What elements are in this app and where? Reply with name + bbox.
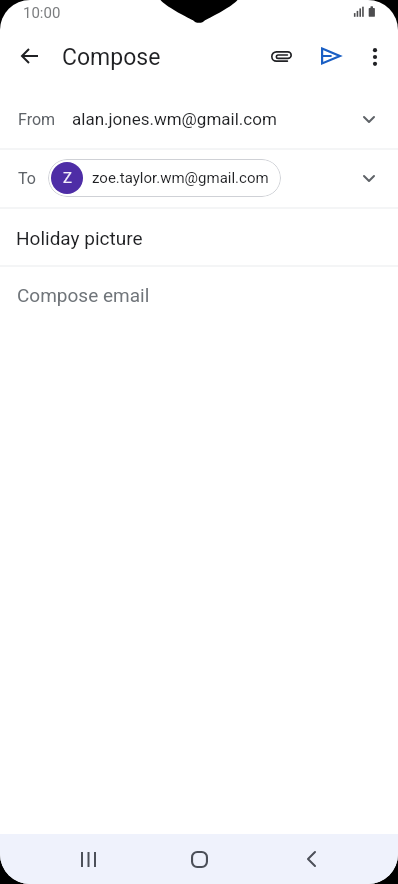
- staticText: Compose email: [17, 284, 150, 306]
- staticText: alan.jones.wm@gmail.com: [72, 109, 277, 129]
- button[interactable]: Holiday picture: [0, 209, 398, 267]
- staticText: To: [18, 169, 36, 188]
- staticText: Compose: [62, 44, 161, 71]
- button[interactable]: Back: [284, 834, 338, 884]
- button[interactable]: Send: [308, 33, 354, 79]
- button[interactable]: Compose email: [0, 267, 398, 323]
- button[interactable]: From: [0, 93, 398, 150]
- button[interactable]: Navigate up: [5, 32, 53, 80]
- button[interactable]: Recent apps: [61, 834, 115, 884]
- staticText: 10:00: [23, 4, 61, 22]
- staticText: zoe.taylor.wm@gmail.com: [92, 169, 269, 187]
- button[interactable]: More options: [352, 34, 397, 79]
- button[interactable]: Home: [172, 834, 226, 884]
- staticText: Z: [63, 169, 72, 187]
- staticText: From: [18, 110, 56, 129]
- button[interactable]: Attach file: [258, 33, 304, 79]
- staticText: Holiday picture: [16, 227, 143, 249]
- button[interactable]: To: [0, 150, 398, 209]
